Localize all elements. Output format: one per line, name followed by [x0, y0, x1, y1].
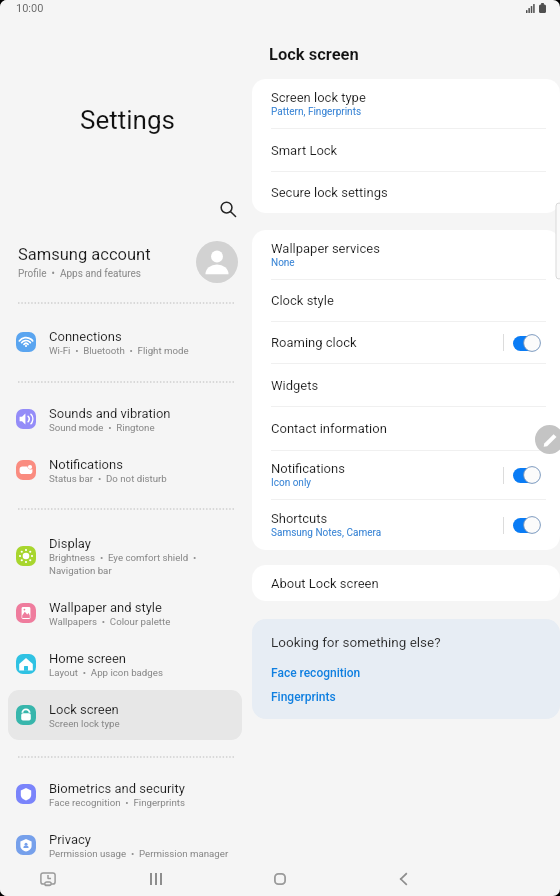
button[interactable]: Home: [259, 862, 301, 896]
staticText: Screen lock type: [271, 90, 366, 105]
button[interactable]: Roaming clock: [513, 334, 541, 352]
staticText: Shortcuts: [271, 511, 328, 526]
button[interactable]: Display: [8, 528, 242, 584]
staticText: Connections: [49, 329, 122, 344]
button[interactable]: About Lock screen: [252, 565, 560, 601]
staticText: Privacy: [49, 832, 91, 847]
staticText: Lock screen: [49, 702, 119, 717]
staticText: Widgets: [271, 378, 319, 393]
staticText: Layout • App icon badges: [49, 667, 163, 678]
staticText: Status bar • Do not disturb: [49, 473, 167, 484]
button[interactable]: Recents: [135, 862, 177, 896]
staticText: Contact information: [271, 421, 387, 436]
staticText: Sound mode • Ringtone: [49, 422, 155, 433]
button[interactable]: Search: [212, 193, 244, 225]
button[interactable]: Notifications: [513, 466, 541, 484]
button[interactable]: Wallpaper and style: [8, 588, 242, 638]
staticText: Display: [49, 536, 91, 551]
button[interactable]: Wallpaper services: [252, 230, 560, 279]
button[interactable]: Roaming clock: [252, 322, 560, 363]
button[interactable]: Shortcuts: [513, 516, 541, 534]
staticText: Sounds and vibration: [49, 406, 171, 421]
button[interactable]: Connections: [8, 317, 242, 367]
button[interactable]: Fingerprints: [271, 690, 336, 704]
staticText: Wallpaper and style: [49, 600, 162, 615]
button[interactable]: Notifications: [8, 445, 242, 495]
staticText: Wallpaper services: [271, 241, 380, 256]
staticText: Face recognition • Fingerprints: [49, 797, 185, 808]
button[interactable]: Back: [382, 862, 424, 896]
button[interactable]: Lock screen: [8, 690, 242, 740]
button[interactable]: Contact information: [252, 407, 560, 450]
staticText: Looking for something else?: [271, 634, 441, 650]
button[interactable]: Widgets: [252, 364, 560, 406]
staticText: Screen lock type: [49, 718, 120, 729]
button[interactable]: Edit: [535, 425, 560, 454]
staticText: Clock style: [271, 293, 334, 308]
staticText: Wi-Fi • Bluetooth • Flight mode: [49, 345, 189, 356]
staticText: None: [271, 257, 295, 269]
staticText: Icon only: [271, 477, 312, 489]
button[interactable]: Sounds and vibration: [8, 394, 242, 444]
staticText: Secure lock settings: [271, 185, 388, 200]
staticText: Brightness • Eye comfort shield • Naviga…: [49, 552, 197, 577]
staticText: Pattern, Fingerprints: [271, 106, 362, 118]
staticText: Notifications: [271, 461, 345, 476]
button[interactable]: Shortcuts: [252, 500, 560, 550]
button[interactable]: Home screen: [8, 639, 242, 689]
button[interactable]: Clock style: [252, 280, 560, 321]
button[interactable]: Notifications: [252, 451, 560, 499]
staticText: Profile • Apps and features: [18, 268, 141, 280]
staticText: Lock screen: [269, 45, 359, 64]
staticText: Smart Lock: [271, 143, 338, 158]
button[interactable]: Privacy: [8, 820, 242, 870]
staticText: Settings: [80, 105, 175, 135]
staticText: Wallpapers • Colour palette: [49, 616, 171, 627]
button[interactable]: Secure lock settings: [252, 172, 560, 213]
staticText: 10:00: [16, 2, 44, 15]
staticText: Home screen: [49, 651, 126, 666]
staticText: Samsung account: [18, 245, 151, 264]
staticText: Biometrics and security: [49, 781, 185, 796]
button[interactable]: Smart Lock: [252, 129, 560, 171]
button[interactable]: Biometrics and security: [8, 769, 242, 819]
staticText: About Lock screen: [271, 576, 379, 591]
button[interactable]: Face recognition: [271, 666, 361, 680]
staticText: Permission usage • Permission manager: [49, 848, 229, 859]
staticText: Samsung Notes, Camera: [271, 527, 382, 539]
staticText: Roaming clock: [271, 335, 357, 350]
button[interactable]: DeX: [28, 862, 68, 896]
staticText: Notifications: [49, 457, 123, 472]
button[interactable]: Screen lock type: [252, 79, 560, 128]
button[interactable]: Samsung account: [8, 236, 246, 288]
